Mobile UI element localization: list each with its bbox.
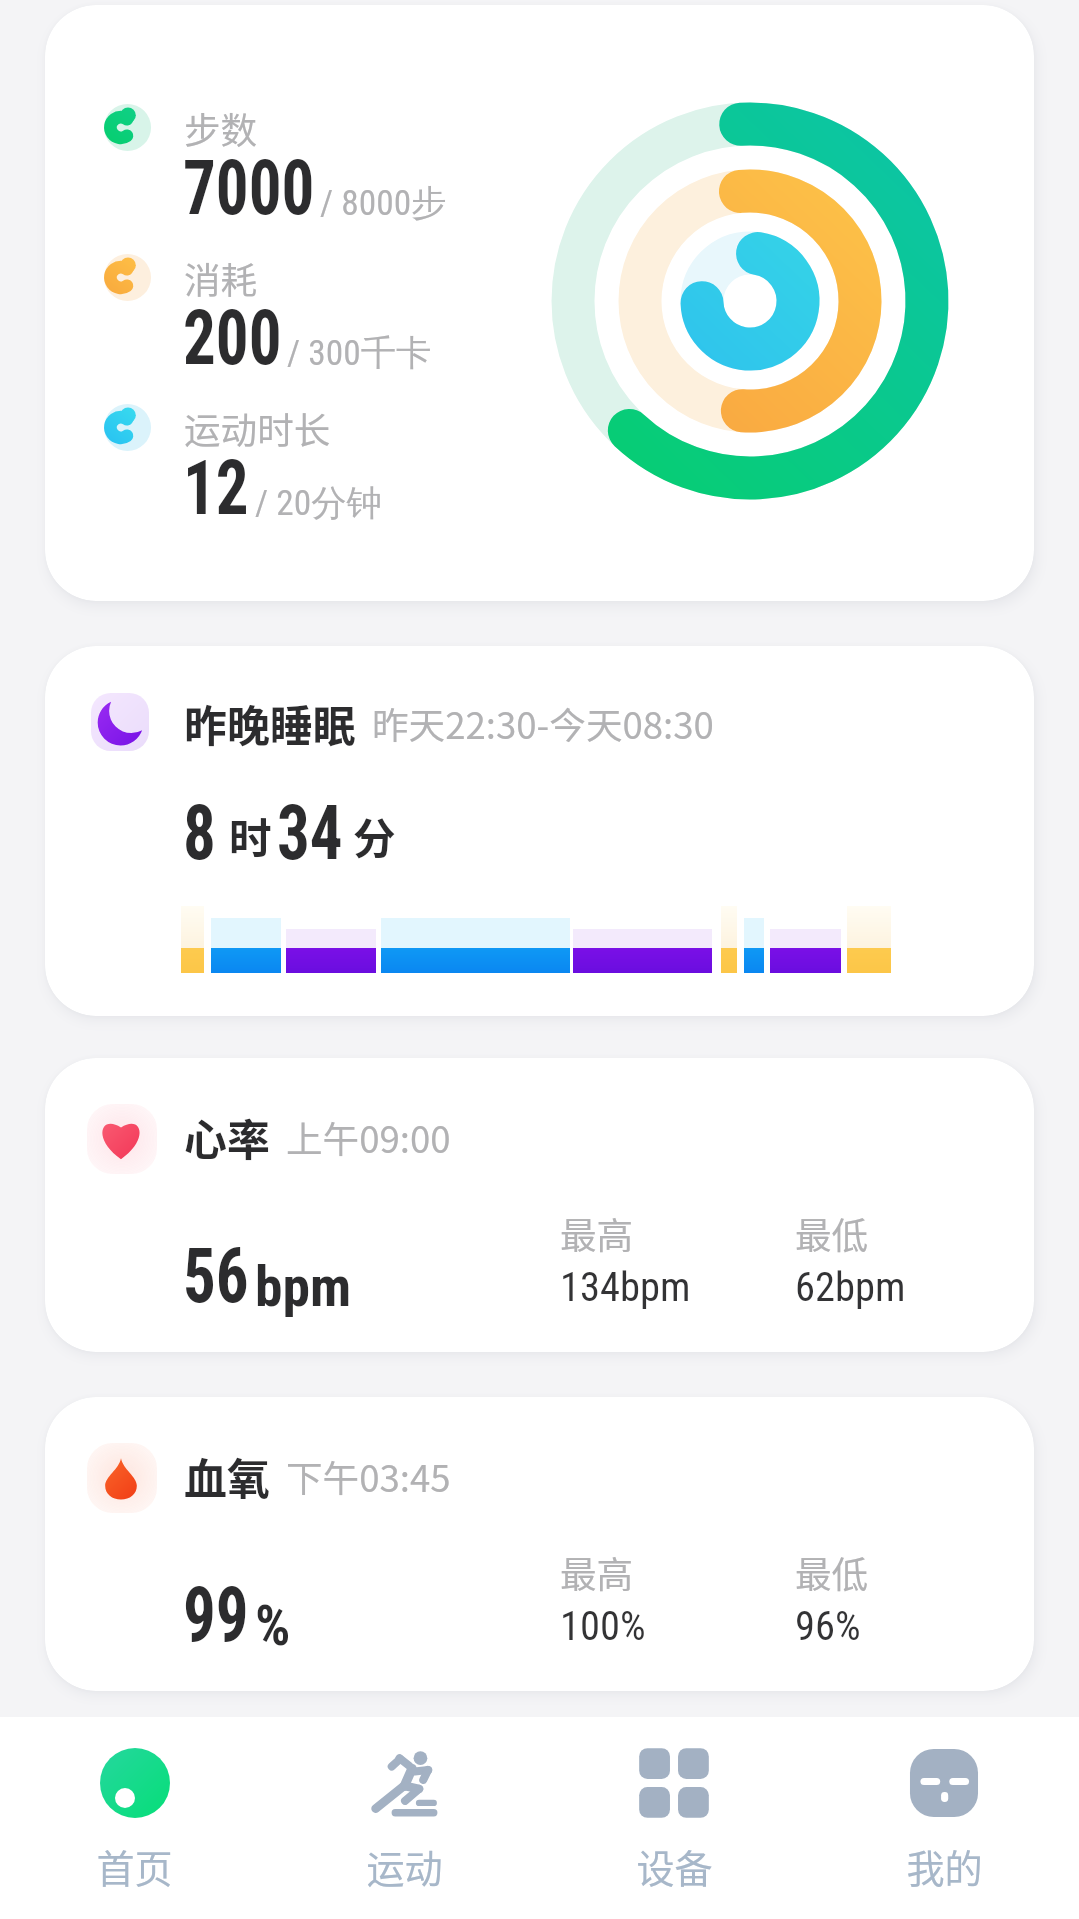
staticText: 时 (229, 805, 272, 867)
button[interactable]: 昨晚睡眠 (45, 646, 1034, 1016)
staticText: 心率 (184, 1106, 270, 1168)
button[interactable]: 步数 (45, 5, 1034, 601)
staticText: 99 (183, 1570, 249, 1660)
staticText: 7000 (183, 143, 315, 233)
button[interactable]: 设备 (539, 1717, 809, 1919)
staticText: 运动时长 (184, 402, 331, 455)
staticText: 34 (277, 788, 343, 878)
staticText: 首页 (96, 1839, 173, 1894)
staticText: 消耗 (184, 252, 258, 305)
staticText: 56 (183, 1231, 249, 1321)
staticText: bpm (255, 1255, 352, 1320)
staticText: 最低 (795, 1207, 869, 1260)
staticText: 设备 (636, 1839, 713, 1894)
staticText: 最高 (560, 1207, 634, 1260)
staticText: 200 (183, 293, 282, 383)
staticText: 最低 (795, 1546, 869, 1599)
staticText: / 20分钟 (255, 481, 382, 526)
staticText: / 8000步 (320, 181, 447, 226)
staticText: / 300千卡 (287, 331, 432, 376)
button[interactable]: 心率 (45, 1058, 1034, 1352)
staticText: 62bpm (795, 1263, 906, 1310)
staticText: 最高 (560, 1546, 634, 1599)
staticText: 96% (795, 1602, 861, 1649)
staticText: 昨晚睡眠 (184, 692, 356, 754)
staticText: 上午09:00 (286, 1111, 451, 1164)
staticText: 昨天22:30-今天08:30 (372, 697, 714, 750)
staticText: 下午03:45 (286, 1450, 451, 1503)
staticText: 运动 (366, 1839, 443, 1894)
staticText: 我的 (906, 1839, 983, 1894)
staticText: 8 (183, 788, 216, 878)
staticText: 134bpm (560, 1263, 691, 1310)
staticText: 步数 (184, 102, 258, 155)
staticText: % (255, 1594, 291, 1659)
staticText: 血氧 (184, 1445, 270, 1507)
button[interactable]: 运动 (269, 1717, 539, 1919)
staticText: 分 (353, 805, 396, 867)
button[interactable]: 我的 (809, 1717, 1079, 1919)
button[interactable]: 血氧 (45, 1397, 1034, 1691)
staticText: 100% (560, 1602, 646, 1649)
staticText: 12 (183, 443, 249, 533)
button[interactable]: 首页 (0, 1717, 269, 1919)
